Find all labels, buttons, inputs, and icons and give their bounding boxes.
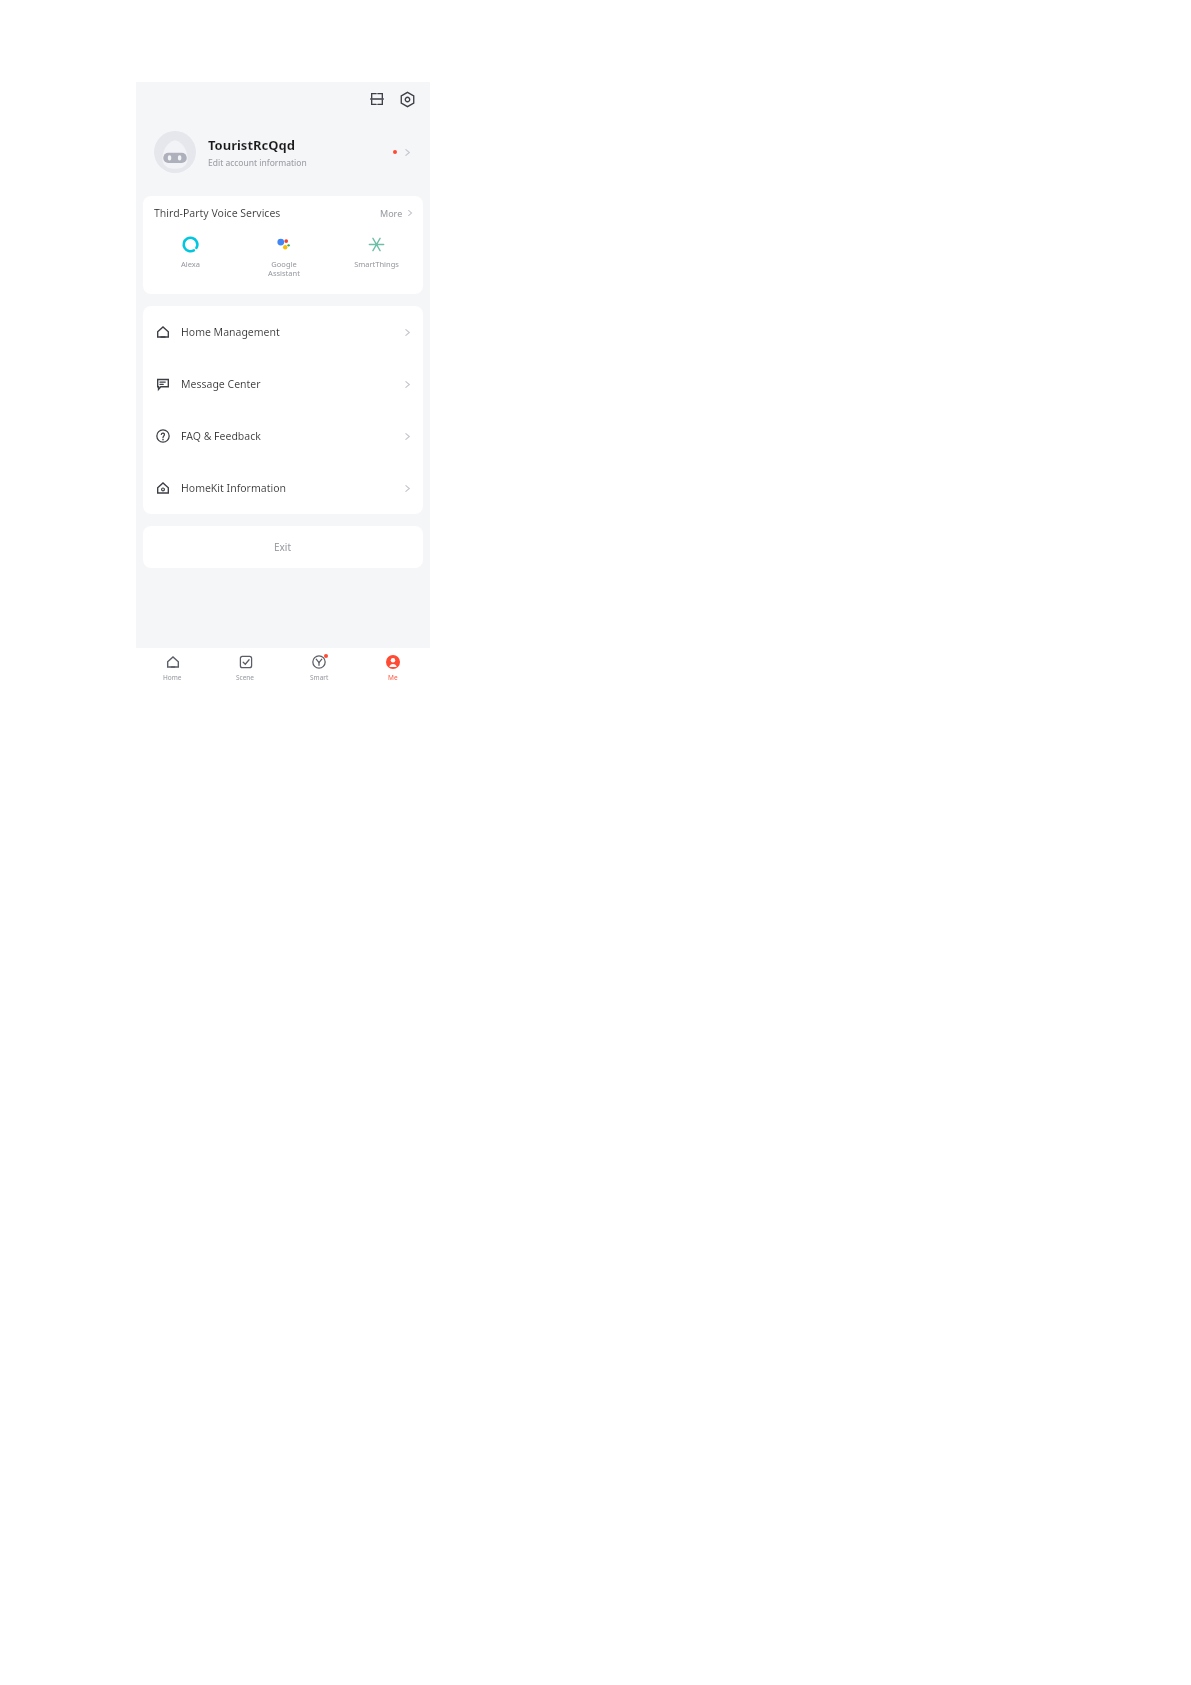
staticText: Scene: [236, 673, 255, 682]
staticText: Google Assistant: [268, 259, 300, 278]
staticText: More: [380, 207, 403, 219]
staticText: Third-Party Voice Services: [154, 206, 281, 220]
staticText: Home Management: [181, 325, 280, 339]
button[interactable]: Message Center: [143, 358, 423, 410]
button[interactable]: Scene: [209, 648, 282, 692]
button[interactable]: Home: [136, 648, 209, 692]
button[interactable]: Home Management: [143, 306, 423, 358]
button[interactable]: Smart: [282, 648, 356, 692]
staticText: Exit: [274, 540, 292, 554]
staticText: Edit account information: [208, 157, 307, 169]
staticText: FAQ & Feedback: [181, 429, 261, 443]
button[interactable]: HomeKit Information: [143, 462, 423, 514]
staticText: Message Center: [181, 377, 261, 391]
staticText: Alexa: [181, 259, 200, 269]
staticText: Smart: [310, 673, 329, 682]
button[interactable]: Exit: [143, 526, 423, 568]
button[interactable]: SmartThings: [330, 230, 423, 294]
button[interactable]: Alexa: [143, 230, 237, 294]
button[interactable]: Google Assistant: [237, 230, 330, 294]
staticText: TouristRcQqd: [208, 136, 295, 154]
button[interactable]: Me: [356, 648, 430, 692]
staticText: Me: [388, 673, 398, 682]
staticText: SmartThings: [354, 259, 399, 269]
button[interactable]: Scan: [364, 86, 390, 112]
staticText: HomeKit Information: [181, 481, 286, 495]
button[interactable]: FAQ & Feedback: [143, 410, 423, 462]
button[interactable]: More: [380, 207, 414, 219]
button[interactable]: TouristRcQqd: [136, 116, 430, 188]
staticText: Home: [163, 673, 182, 682]
button[interactable]: Settings: [394, 86, 420, 112]
